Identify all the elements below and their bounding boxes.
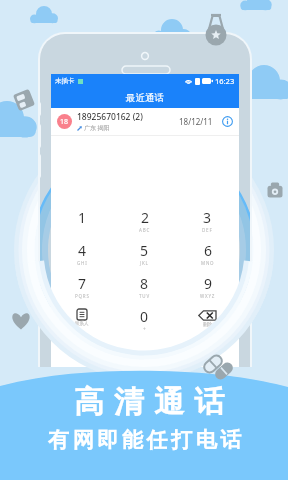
staticText: 18/12/11 (179, 116, 213, 127)
staticText: 18 (60, 117, 69, 127)
staticText: MNO (201, 260, 215, 266)
staticText: 1 (78, 208, 87, 227)
button[interactable]: 1 (51, 208, 113, 241)
button[interactable]: Call details (222, 116, 233, 127)
staticText: JKL (140, 260, 149, 266)
button[interactable]: 2 (113, 208, 176, 241)
staticText: TUV (139, 293, 150, 299)
staticText: 9 (204, 274, 213, 293)
staticText: DEF (202, 227, 213, 233)
staticText: 广东 揭阳 (84, 124, 110, 132)
button[interactable]: Contacts (51, 307, 113, 340)
button[interactable]: 6 (176, 241, 239, 274)
staticText: 联系人 (75, 321, 89, 327)
staticText: + (143, 326, 146, 333)
staticText: PQRS (75, 293, 90, 299)
button[interactable]: 7 (51, 274, 113, 307)
staticText: 6 (204, 241, 213, 260)
staticText: 18925670162 (2) (77, 111, 143, 123)
button[interactable]: 8 (113, 274, 176, 307)
staticText: 7 (78, 274, 87, 293)
staticText: 16:23 (215, 76, 235, 86)
button[interactable]: 3 (176, 208, 239, 241)
button[interactable]: 18 (51, 108, 239, 135)
button[interactable]: 4 (51, 241, 113, 274)
staticText: 未插卡 (55, 77, 75, 85)
staticText: 有网即能任打电话 (48, 427, 245, 453)
button[interactable]: 0 (113, 307, 176, 340)
button[interactable]: 9 (176, 274, 239, 307)
staticText: 8 (140, 274, 149, 293)
button[interactable]: Delete (176, 307, 239, 340)
staticText: WXYZ (200, 293, 216, 299)
staticText: ABC (139, 227, 151, 233)
staticText: 2 (141, 208, 150, 227)
staticText: 4 (78, 241, 87, 260)
staticText: GHI (77, 260, 88, 266)
staticText: 3 (203, 208, 212, 227)
staticText: 0 (140, 307, 149, 326)
staticText: 5 (140, 241, 149, 260)
staticText: 高清通话 (69, 383, 229, 421)
staticText: 最近通话 (126, 92, 164, 104)
staticText: 删除 (203, 322, 212, 328)
button[interactable]: 5 (113, 241, 176, 274)
